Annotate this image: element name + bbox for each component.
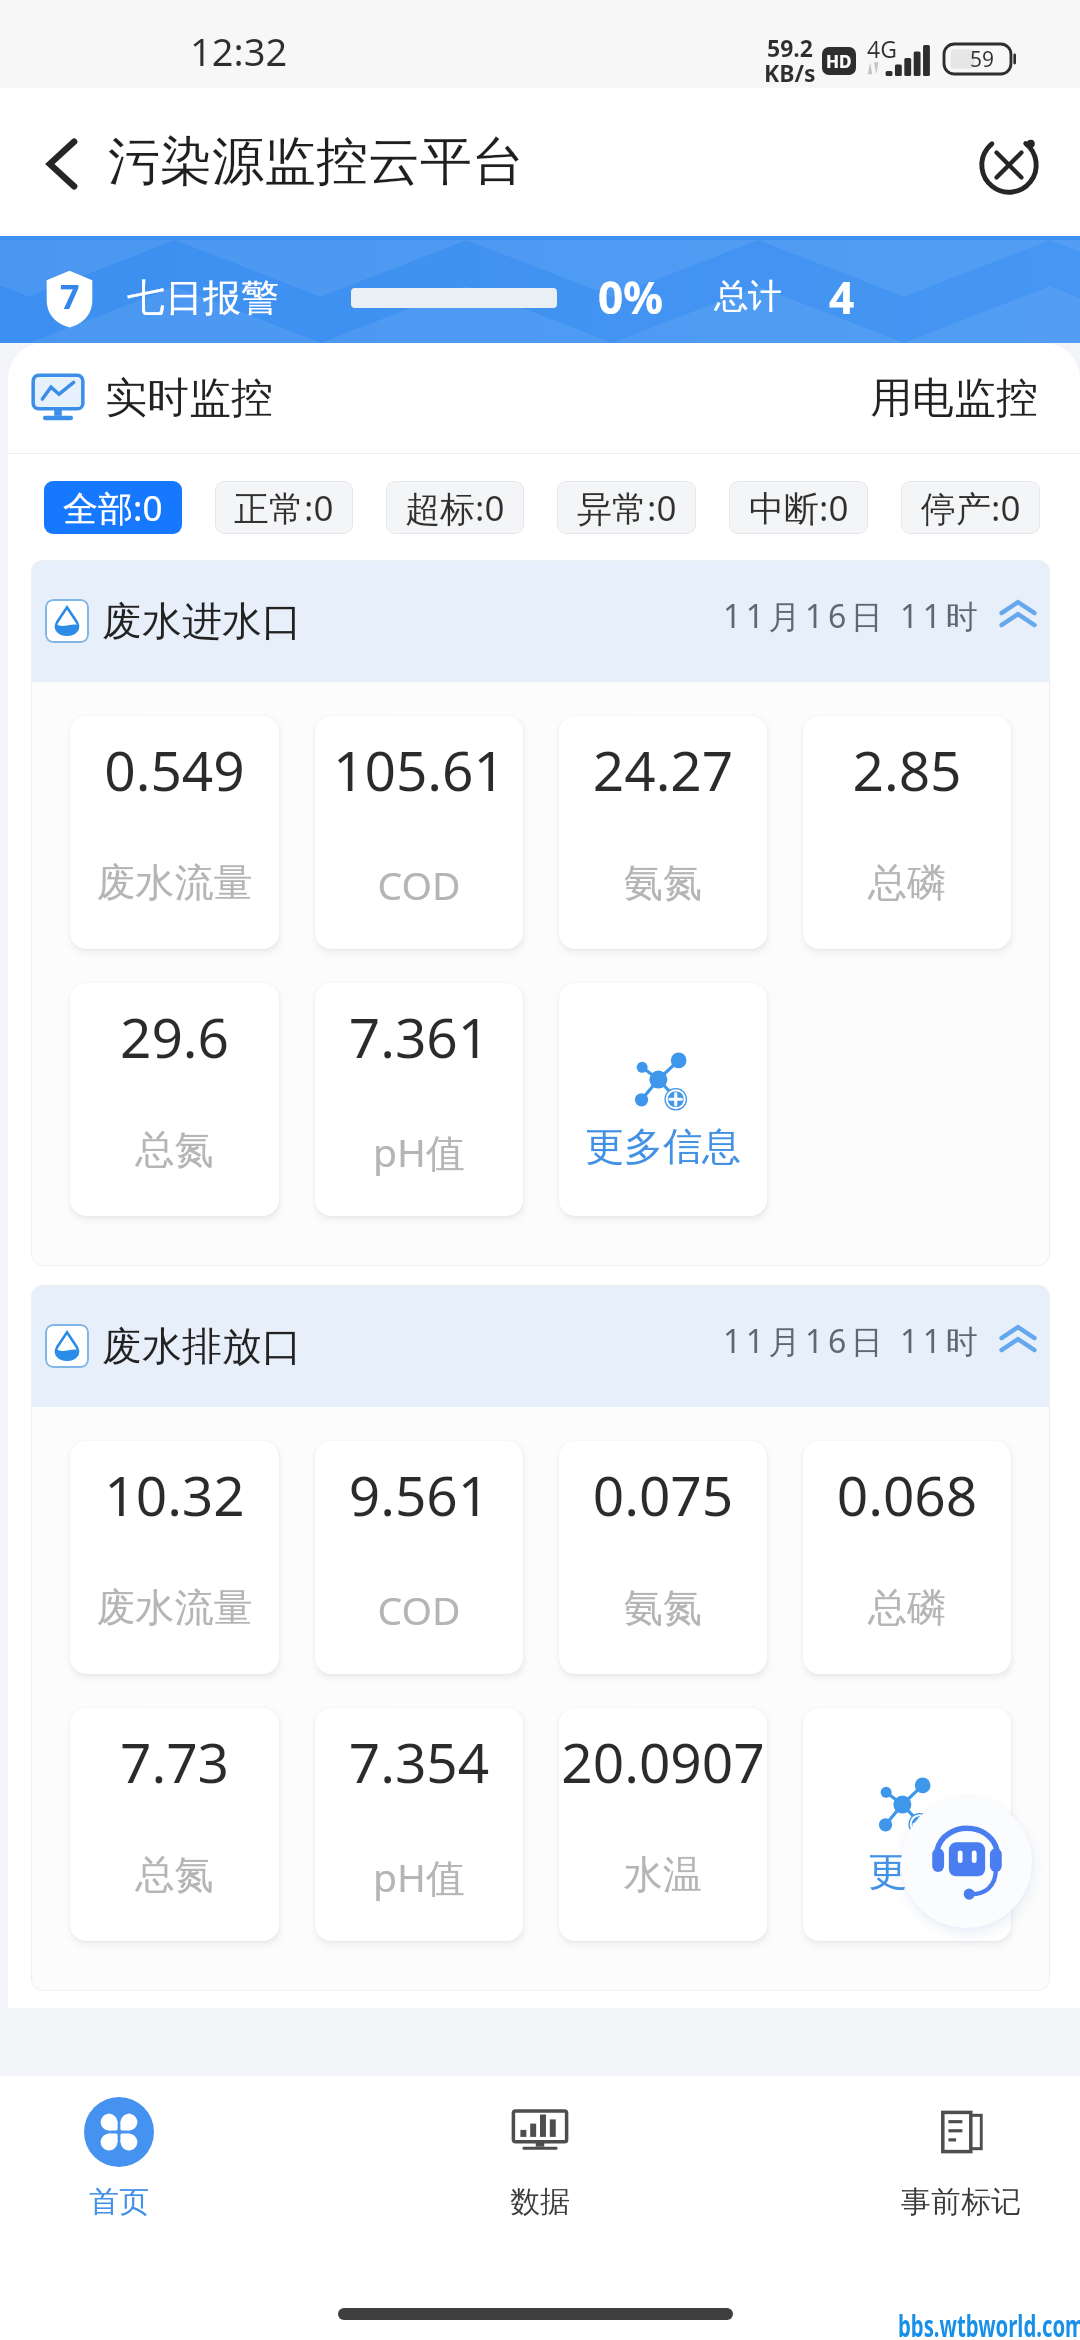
staticText: 事前标记 (901, 2183, 1021, 2221)
staticText: 29.6 (70, 999, 279, 1074)
button[interactable]: 105.61 (315, 716, 523, 949)
staticText: 0% (598, 267, 663, 327)
button[interactable]: 异常:0 (557, 481, 696, 534)
button[interactable]: 事前标记 (881, 2076, 1041, 2226)
staticText: 总计 (714, 275, 782, 318)
staticText: HD (826, 50, 852, 73)
button[interactable]: 0.075 (559, 1441, 767, 1674)
staticText: 2.85 (803, 732, 1011, 807)
staticText: 9.561 (315, 1457, 523, 1532)
staticText: pH值 (315, 1125, 523, 1178)
button[interactable]: 2.85 (803, 716, 1011, 949)
button[interactable]: 20.0907 (559, 1708, 767, 1941)
staticText: bbs.wtbworld.com (898, 2304, 1080, 2340)
staticText: 7 (60, 273, 80, 319)
button[interactable]: 停产:0 (901, 481, 1040, 534)
staticText: 全部:0 (63, 484, 163, 532)
staticText: 总磷 (803, 858, 1011, 907)
staticText: 废水流量 (70, 858, 279, 907)
staticText: 11月16日 11时 (723, 594, 983, 638)
staticText: 0.075 (559, 1457, 767, 1532)
button[interactable]: 7.354 (315, 1708, 523, 1941)
button[interactable]: 0.068 (803, 1441, 1011, 1674)
staticText: 氨氮 (559, 1583, 767, 1632)
button[interactable]: 7.73 (70, 1708, 279, 1941)
staticText: 氨氮 (559, 858, 767, 907)
button[interactable]: 废水排放口 (45, 1285, 1041, 1407)
button[interactable]: 全部:0 (44, 481, 182, 534)
staticText: 7.354 (315, 1724, 523, 1799)
staticText: 105.61 (315, 732, 523, 807)
button[interactable]: 超标:0 (386, 481, 524, 534)
staticText: 停产:0 (921, 484, 1021, 532)
button[interactable]: 29.6 (70, 983, 279, 1216)
staticText: 总氮 (70, 1125, 279, 1174)
staticText: 更多 (868, 1847, 946, 1896)
staticText: COD (315, 858, 523, 911)
button[interactable]: 10.32 (70, 1441, 279, 1674)
button[interactable]: 更多 (803, 1708, 1011, 1941)
staticText: 用电监控 (870, 372, 1038, 425)
button[interactable]: 返回 (28, 136, 96, 192)
staticText: 废水排放口 (102, 1321, 302, 1371)
staticText: 更多信息 (585, 1122, 741, 1171)
staticText: 24.27 (559, 732, 767, 807)
staticText: 首页 (89, 2183, 149, 2221)
staticText: 20.0907 (559, 1724, 767, 1799)
button[interactable]: 废水进水口 (45, 560, 1041, 682)
staticText: 总氮 (70, 1850, 279, 1899)
button[interactable]: 在线客服 (901, 1797, 1032, 1928)
staticText: 污染源监控云平台 (108, 129, 524, 195)
staticText: pH值 (315, 1850, 523, 1903)
staticText: 异常:0 (577, 484, 677, 532)
staticText: 4 (829, 267, 855, 327)
staticText: 11月16日 11时 (723, 1319, 983, 1363)
staticText: 总磷 (803, 1583, 1011, 1632)
staticText: 正常:0 (234, 484, 334, 532)
button[interactable]: 数据 (460, 2076, 620, 2226)
button[interactable]: 更多信息 (559, 983, 767, 1216)
button[interactable]: 24.27 (559, 716, 767, 949)
button[interactable]: 首页 (39, 2076, 199, 2226)
button[interactable]: 7.361 (315, 983, 523, 1216)
staticText: 7.73 (70, 1724, 279, 1799)
button[interactable]: 关闭 (965, 121, 1053, 209)
staticText: 七日报警 (127, 274, 279, 322)
staticText: 12:32 (190, 25, 288, 77)
staticText: COD (315, 1583, 523, 1636)
button[interactable]: 实时监控 (31, 371, 273, 425)
staticText: 4G (867, 33, 897, 64)
button[interactable]: 7 (0, 240, 1080, 343)
staticText: 0.068 (803, 1457, 1011, 1532)
button[interactable]: 9.561 (315, 1441, 523, 1674)
staticText: 59 (970, 45, 995, 74)
button[interactable]: 中断:0 (729, 481, 868, 534)
staticText: 超标:0 (405, 484, 505, 532)
staticText: 水温 (559, 1850, 767, 1899)
button[interactable]: 用电监控 (870, 372, 1038, 425)
button[interactable]: 正常:0 (215, 481, 353, 534)
button[interactable]: 0.549 (70, 716, 279, 949)
staticText: 废水流量 (70, 1583, 279, 1632)
staticText: 7.361 (315, 999, 523, 1074)
staticText: 实时监控 (105, 372, 273, 425)
staticText: 数据 (510, 2183, 570, 2221)
staticText: KB/s (764, 57, 816, 82)
staticText: 中断:0 (749, 484, 849, 532)
staticText: 废水进水口 (102, 596, 302, 646)
staticText: 0.549 (70, 732, 279, 807)
staticText: 59.2 (767, 32, 813, 57)
staticText: 10.32 (70, 1457, 279, 1532)
